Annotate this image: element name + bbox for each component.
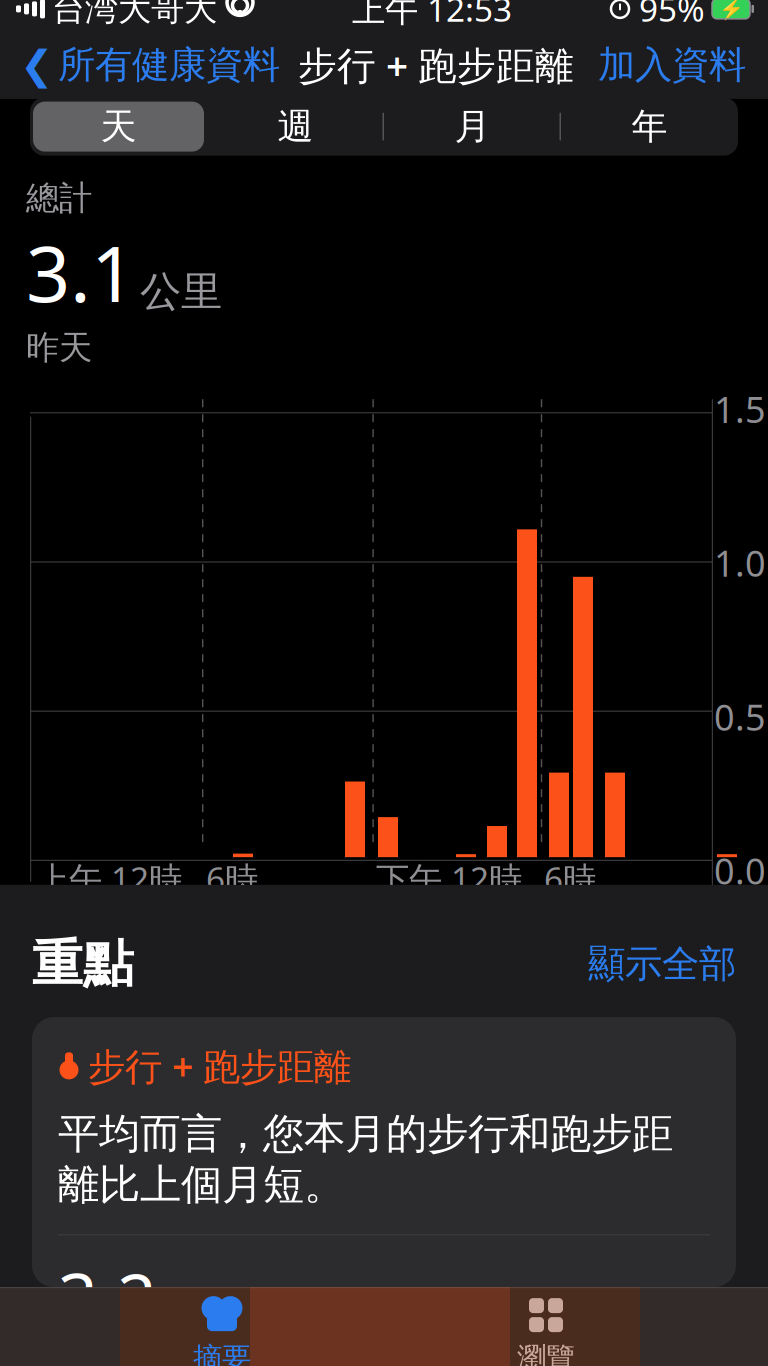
staticText: 95% <box>639 0 705 31</box>
button[interactable]: 瀏覽 <box>384 1288 708 1366</box>
staticText: 0.0 <box>714 847 766 894</box>
staticText: 步行 + 跑步距離 <box>298 39 574 90</box>
button[interactable]: ❮ <box>0 32 280 98</box>
staticText: 3.2 <box>58 1251 157 1343</box>
staticText: 步行 + 跑步距離 <box>88 1041 351 1091</box>
button[interactable]: 加入資料 <box>598 32 768 98</box>
staticText: 上午 12:53 <box>352 0 512 31</box>
button[interactable]: 月 <box>384 98 561 156</box>
staticText: 公里 <box>140 266 222 317</box>
button[interactable]: 顯示全部 <box>588 941 736 987</box>
staticText: ⚡ <box>718 0 743 20</box>
staticText: 平均而言，您本月的步行和跑步距離比上個月短。 <box>58 1109 673 1210</box>
staticText: 台湾大哥大 <box>52 0 217 29</box>
staticText: 瀏覽 <box>517 1340 575 1366</box>
staticText: 重點 <box>32 933 134 995</box>
button[interactable]: 週 <box>207 98 384 156</box>
staticText: 1.5 <box>714 385 766 433</box>
staticText: ❮ <box>20 42 54 88</box>
staticText: 1.0 <box>714 539 766 587</box>
staticText: 0.5 <box>714 693 766 741</box>
staticText: 3.1 <box>26 220 135 323</box>
staticText: 摘要 <box>193 1340 251 1366</box>
staticText: 天 <box>100 104 136 149</box>
staticText: 月 <box>454 104 490 149</box>
button[interactable]: 摘要 <box>60 1288 384 1366</box>
staticText: 上午 12時 <box>36 856 182 900</box>
staticText: 週 <box>277 104 313 149</box>
staticText: 6時 <box>206 856 258 900</box>
staticText: 加入資料 <box>598 42 746 88</box>
staticText: 所有健康資料 <box>58 42 280 88</box>
staticText: 年 <box>631 104 667 149</box>
staticText: 總計 <box>26 178 92 218</box>
staticText: 顯示全部 <box>588 941 736 987</box>
button[interactable]: 步行 + 跑步距離 <box>32 1017 736 1287</box>
button[interactable]: 年 <box>561 98 738 156</box>
staticText: 昨天 <box>26 327 92 368</box>
staticText: 下午 12時 <box>376 856 522 900</box>
staticText: 6時 <box>544 856 596 900</box>
staticText: 公里/天 <box>161 1287 292 1338</box>
button[interactable]: 天 <box>30 98 207 156</box>
